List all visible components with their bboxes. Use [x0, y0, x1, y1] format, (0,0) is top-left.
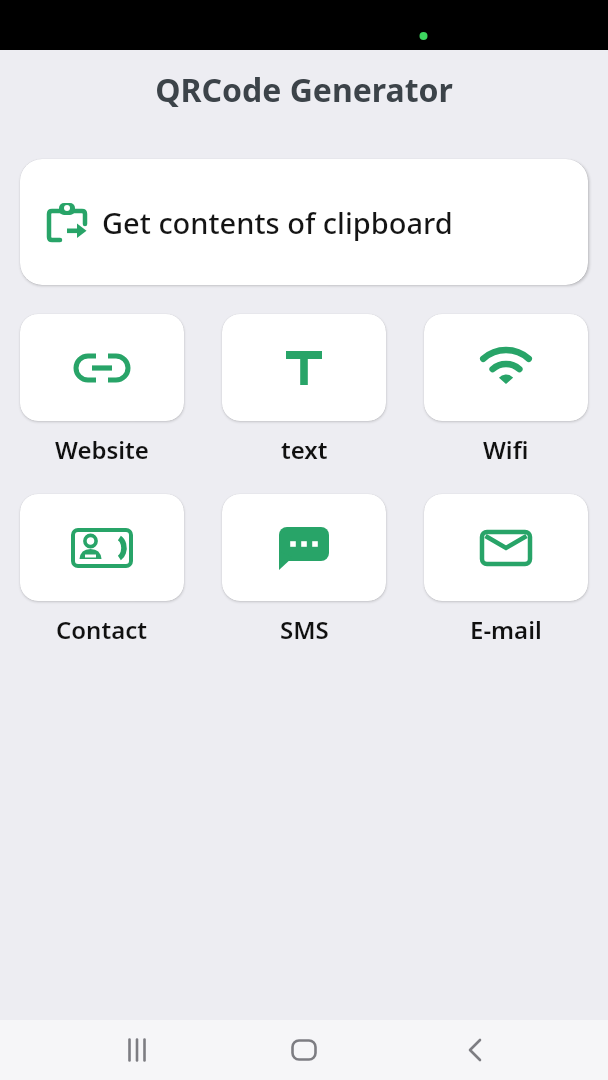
- button[interactable]: [276, 1022, 332, 1078]
- button[interactable]: [109, 1022, 165, 1078]
- staticText: QRCode Generator: [0, 68, 608, 112]
- staticText: E-mail: [470, 613, 542, 646]
- button[interactable]: [424, 314, 588, 421]
- button[interactable]: [222, 314, 386, 421]
- button[interactable]: [447, 1022, 503, 1078]
- button[interactable]: [20, 494, 184, 601]
- button[interactable]: [20, 314, 184, 421]
- staticText: Website: [55, 433, 149, 466]
- staticText: Get contents of clipboard: [102, 203, 453, 242]
- button[interactable]: Get contents of clipboard: [20, 159, 588, 285]
- staticText: Wifi: [483, 433, 529, 466]
- button[interactable]: [424, 494, 588, 601]
- staticText: Contact: [56, 613, 148, 646]
- staticText: SMS: [280, 613, 329, 646]
- button[interactable]: [222, 494, 386, 601]
- staticText: text: [281, 433, 328, 466]
